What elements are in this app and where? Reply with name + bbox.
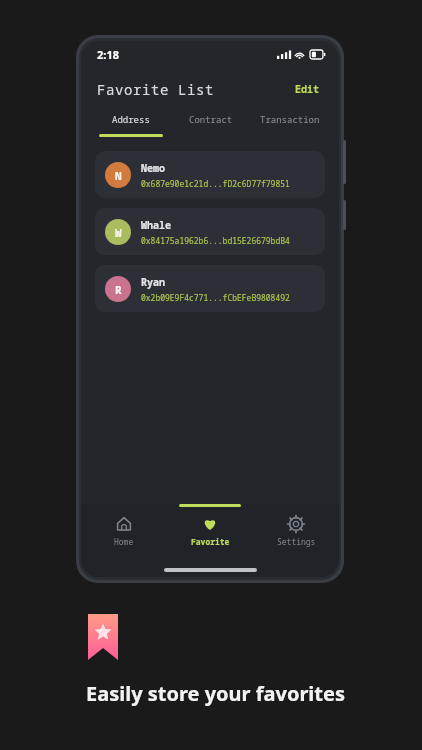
button[interactable]: R [95,265,325,312]
staticText: 0x687e90e1c21d...fD2c6D77f79851 [141,178,290,189]
button[interactable]: Edit [291,79,323,99]
staticText: 0x84175a1962b6...bd15E26679bdB4 [141,235,290,246]
staticText: Address [112,113,150,125]
button[interactable]: Settings [253,504,339,562]
button[interactable]: Transaction [250,109,329,129]
staticText: Whale [141,218,171,232]
staticText: Favorite [191,536,230,547]
button[interactable]: Address [91,109,171,129]
staticText: 0x2b09E9F4c771...fCbEFeB9808492 [141,292,290,303]
button[interactable]: N [95,151,325,198]
staticText: Easily store your favorites [86,680,345,707]
button[interactable]: W [95,208,325,255]
staticText: Transaction [260,113,320,125]
staticText: Favorite List [97,80,214,99]
other: Favorites bookmark [88,614,118,660]
staticText: Nemo [141,161,165,175]
staticText: Contract [189,113,233,125]
staticText: Settings [277,536,316,547]
staticText: Home [114,536,134,547]
staticText: R [115,282,122,297]
staticText: N [115,168,122,183]
staticText: Ryan [141,275,165,289]
button[interactable]: Home [81,504,167,562]
button[interactable]: Favorite [167,504,253,562]
staticText: Edit [295,82,319,96]
staticText: 2:18 [97,47,119,62]
button[interactable]: Contract [171,109,250,129]
staticText: W [115,225,122,240]
